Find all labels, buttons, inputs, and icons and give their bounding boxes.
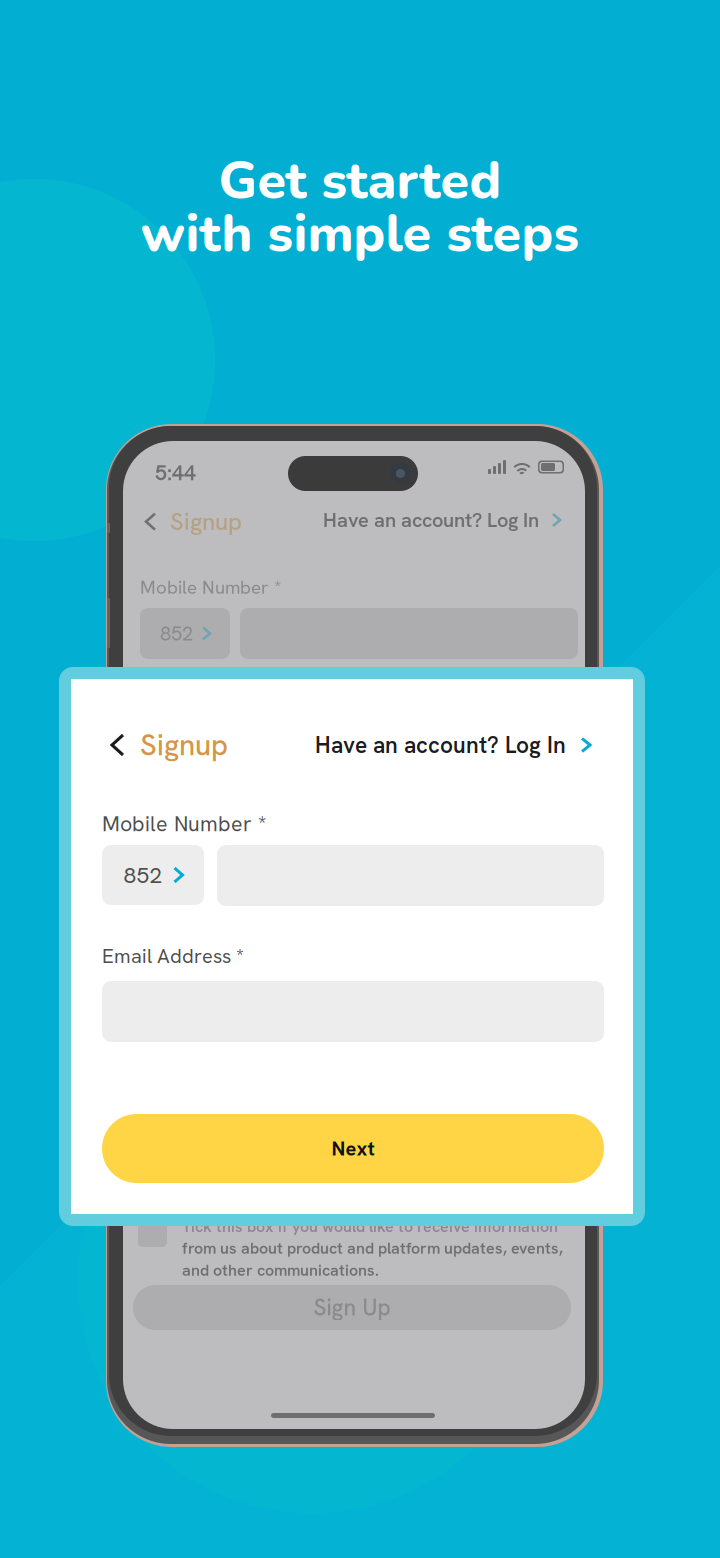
button[interactable]: Next — [102, 1114, 604, 1183]
staticText: Email Address * — [102, 943, 244, 969]
staticText: Signup — [170, 506, 242, 537]
button[interactable]: Signup — [112, 725, 228, 765]
staticText: 5:44 — [155, 459, 196, 487]
staticText: Mobile Number * — [140, 575, 281, 599]
staticText: Have an account? Log In — [323, 507, 539, 533]
staticText: Get started — [218, 145, 501, 216]
staticText: Have an account? Log In — [315, 730, 566, 760]
staticText: Next — [331, 1135, 374, 1162]
staticText: Sign Up — [313, 1293, 390, 1322]
button[interactable]: 852 — [102, 845, 204, 905]
staticText: Signup — [140, 726, 228, 764]
staticText: Mobile Number * — [102, 810, 266, 838]
staticText: from us about product and platform updat… — [182, 1238, 563, 1259]
staticText: with simple steps — [140, 198, 579, 269]
staticText: 852 — [160, 620, 193, 647]
staticText: and other communications. — [182, 1260, 379, 1280]
button[interactable]: Have an account? Log In — [315, 725, 590, 765]
staticText: Tick this box if you would like to recei… — [182, 1216, 558, 1237]
staticText: 852 — [123, 860, 162, 890]
